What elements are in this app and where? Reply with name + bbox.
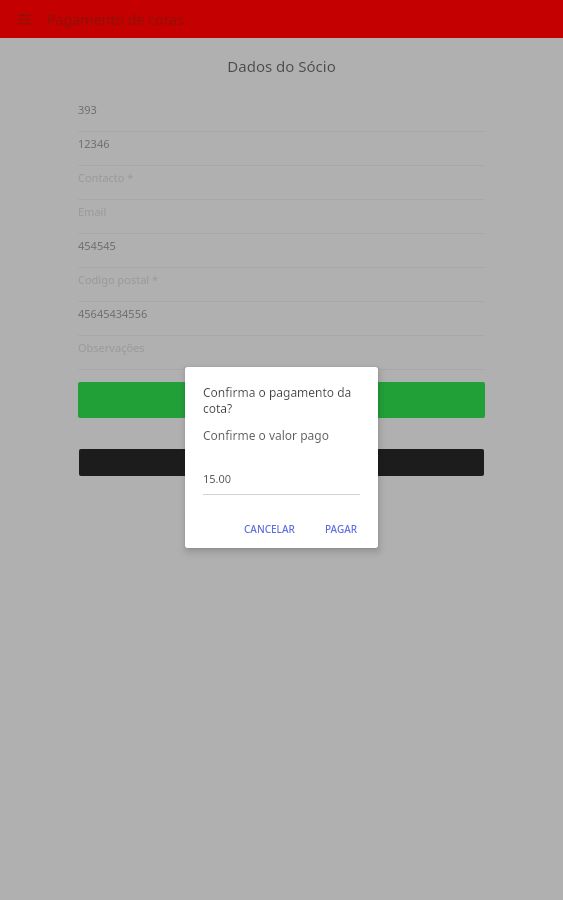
button[interactable]: 12346 xyxy=(78,132,485,166)
staticText: PAGAR xyxy=(325,522,358,536)
staticText: 454545 xyxy=(78,238,116,253)
staticText: Confirme o valor pago xyxy=(203,427,329,443)
staticText: 393 xyxy=(78,102,97,117)
staticText: Confirma o pagamento da cota? xyxy=(203,384,360,416)
staticText: 12346 xyxy=(78,136,110,151)
button[interactable]: Observações xyxy=(78,336,485,370)
button[interactable]: CANCELAR xyxy=(236,516,303,542)
button[interactable]: 15.00 xyxy=(203,471,360,495)
staticText: 15.00 xyxy=(203,471,232,486)
button[interactable]: 393 xyxy=(78,98,485,132)
button[interactable]: PAGAR xyxy=(317,516,366,542)
staticText: Email xyxy=(78,204,107,219)
button[interactable]: 45645434556 xyxy=(78,302,485,336)
staticText: 45645434556 xyxy=(78,306,148,321)
button[interactable]: 454545 xyxy=(78,234,485,268)
staticText: CANCELAR xyxy=(244,522,295,536)
staticText: Observações xyxy=(78,340,145,355)
staticText: Dados do Sócio xyxy=(0,56,563,76)
staticText: Contacto * xyxy=(78,170,134,185)
staticText: Pagamento de cotas xyxy=(47,10,184,29)
button[interactable] xyxy=(79,449,484,476)
button[interactable] xyxy=(78,382,485,418)
button[interactable]: Open navigation menu xyxy=(10,5,38,33)
staticText: Codigo postal * xyxy=(78,272,159,287)
